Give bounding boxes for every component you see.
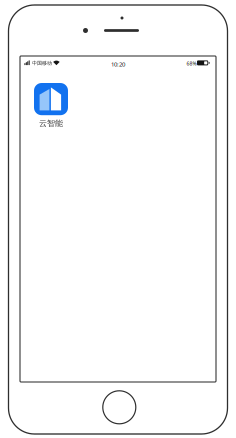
button[interactable]: 云智能 (34, 83, 68, 128)
staticText: 云智能 (39, 118, 63, 128)
staticText: 68% (186, 60, 196, 67)
staticText: 中国移动 (32, 60, 52, 66)
button[interactable]: Home (103, 391, 136, 424)
staticText: 10:20 (111, 60, 125, 68)
